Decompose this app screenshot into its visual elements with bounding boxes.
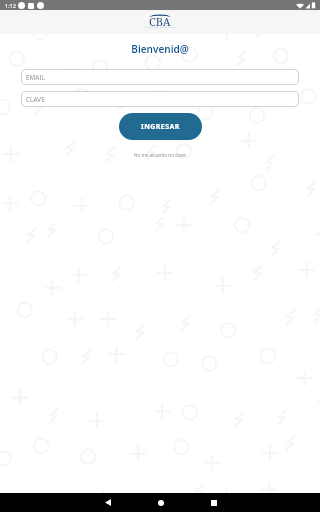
staticText: Bienvenid@ [131, 42, 189, 56]
button[interactable]: Recent apps [187, 493, 240, 512]
staticText: INGRESAR [141, 122, 180, 132]
button[interactable]: EMAIL [21, 69, 299, 85]
button[interactable]: CLAVE [21, 91, 299, 107]
staticText: CLAVE [26, 95, 45, 103]
staticText: CBA [149, 14, 171, 29]
button[interactable]: No me acuerdo mi clave [134, 152, 186, 158]
staticText: 1:12 [5, 2, 16, 9]
staticText: COLEGIO DE BIOQUIMICOS [145, 25, 176, 28]
button[interactable]: Back [81, 493, 134, 512]
button[interactable]: Home [134, 493, 187, 512]
staticText: EMAIL [26, 73, 46, 81]
button[interactable]: INGRESAR [119, 113, 202, 140]
